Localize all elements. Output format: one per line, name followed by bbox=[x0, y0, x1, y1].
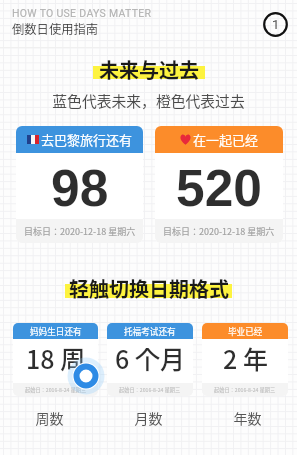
staticText: 2 年 bbox=[223, 340, 268, 376]
staticText: 轻触切换日期格式 bbox=[69, 274, 229, 303]
staticText: 目标日：2020-12-18 星期六 bbox=[24, 225, 136, 238]
staticText: 98 bbox=[51, 159, 109, 217]
staticText: 毕业已经 bbox=[228, 325, 263, 337]
staticText: 倒数日使用指南 bbox=[12, 20, 99, 38]
staticText: 18 周 bbox=[26, 340, 86, 376]
staticText: 周数 bbox=[0, 408, 99, 428]
staticText: 妈妈生日还有 bbox=[30, 325, 82, 337]
button[interactable]: 毕业已经 bbox=[202, 323, 288, 396]
staticText: 起始日：2016-8-24 星期三 bbox=[25, 386, 87, 394]
staticText: 去巴黎旅行还有 bbox=[41, 130, 133, 149]
button[interactable]: Step 1 bbox=[263, 12, 288, 37]
staticText: 1 bbox=[272, 17, 280, 32]
staticText: 在一起已经 bbox=[193, 130, 259, 149]
staticText: 未来与过去 bbox=[99, 55, 199, 84]
staticText: 蓝色代表未来，橙色代表过去 bbox=[0, 90, 297, 111]
staticText: 月数 bbox=[99, 408, 198, 428]
staticText: 6 个月 bbox=[115, 340, 185, 376]
button[interactable]: 去巴黎旅行还有 bbox=[16, 126, 143, 243]
button[interactable]: 妈妈生日还有 bbox=[13, 323, 98, 396]
staticText: 起始日：2016-8-24 星期三 bbox=[119, 386, 181, 394]
staticText: 年数 bbox=[198, 408, 297, 428]
staticText: HOW TO USE DAYS MATTER bbox=[12, 7, 152, 19]
staticText: 520 bbox=[176, 159, 262, 217]
staticText: 托福考试还有 bbox=[124, 325, 176, 337]
staticText: 起始日：2016-8-24 星期三 bbox=[214, 386, 276, 394]
button[interactable]: 在一起已经 bbox=[155, 126, 283, 243]
button[interactable]: 托福考试还有 bbox=[107, 323, 193, 396]
staticText: 目标日：2020-12-18 星期六 bbox=[163, 225, 275, 238]
